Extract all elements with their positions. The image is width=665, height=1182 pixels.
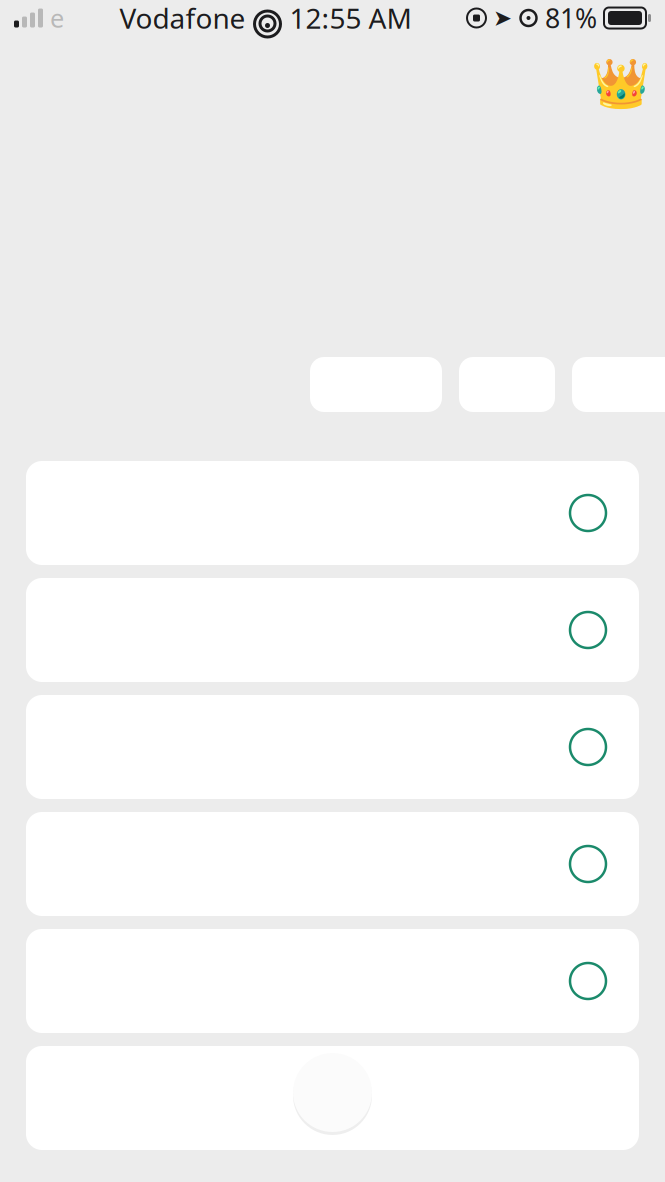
staticText: ➤ bbox=[493, 5, 512, 31]
staticText: e bbox=[50, 1, 64, 35]
button[interactable]: Filter bbox=[459, 357, 555, 412]
staticText: 12:55 AM bbox=[289, 0, 411, 37]
button[interactable]: Task 2 bbox=[26, 578, 639, 682]
staticText: Vodafone bbox=[119, 0, 245, 37]
button[interactable]: Task 4 bbox=[26, 812, 639, 916]
staticText: 81% bbox=[545, 0, 597, 36]
button[interactable]: Task 3 bbox=[26, 695, 639, 799]
button[interactable]: Task 5 bbox=[26, 929, 639, 1033]
button[interactable]: Premium bbox=[595, 62, 647, 106]
button[interactable]: Task 1 bbox=[26, 461, 639, 565]
staticText: 👑 bbox=[591, 57, 651, 111]
